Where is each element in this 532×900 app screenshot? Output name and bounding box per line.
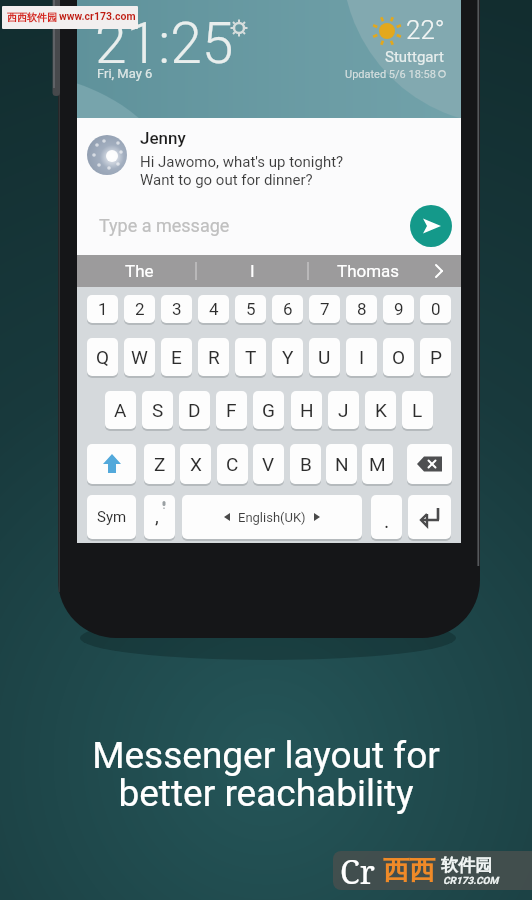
staticText: 2 [135, 299, 145, 319]
button[interactable] [87, 444, 136, 484]
staticText: 软件园 [441, 855, 492, 876]
button[interactable]: , [144, 495, 175, 539]
button[interactable]: K [365, 391, 396, 429]
staticText: B [300, 453, 312, 475]
staticText: 21:25 [95, 10, 234, 77]
button[interactable]: V [253, 444, 284, 484]
staticText: www.cr173.com [59, 10, 136, 22]
staticText: A [114, 399, 127, 421]
button[interactable]: English(UK) [182, 495, 362, 539]
button[interactable]: I [196, 255, 308, 287]
button[interactable]: 3 [161, 295, 192, 323]
button[interactable]: H [291, 391, 322, 429]
button[interactable]: 2 [124, 295, 155, 323]
staticText: , [155, 505, 159, 527]
staticText: M [369, 453, 386, 475]
button[interactable]: 1 [87, 295, 118, 323]
button[interactable]: Q [87, 338, 118, 376]
button[interactable]: Type a message [87, 203, 367, 247]
staticText: Messenger layout for better reachability [0, 734, 532, 815]
button[interactable]: A [105, 391, 136, 429]
staticText: Jenny [140, 128, 186, 148]
staticText: P [430, 346, 442, 368]
staticText: English(UK) [238, 510, 306, 525]
staticText: L [412, 399, 423, 421]
button[interactable]: M [362, 444, 393, 484]
staticText: . [384, 509, 390, 532]
button[interactable]: G [253, 391, 284, 429]
button[interactable]: L [402, 391, 433, 429]
staticText: 4 [209, 299, 219, 319]
staticText: N [335, 453, 349, 475]
staticText: Updated 5/6 18:58 [345, 68, 436, 81]
staticText: 9 [394, 299, 404, 319]
button[interactable]: O [383, 338, 414, 376]
staticText: W [131, 346, 148, 368]
staticText: X [190, 453, 202, 475]
button[interactable]: E [161, 338, 192, 376]
button[interactable]: 7 [309, 295, 340, 323]
button[interactable]: W [124, 338, 155, 376]
staticText: J [338, 399, 349, 421]
staticText: Cr [340, 851, 375, 889]
staticText: O [392, 346, 406, 368]
button[interactable] [425, 255, 453, 287]
staticText: Z [154, 453, 166, 475]
button[interactable]: 8 [346, 295, 377, 323]
button[interactable]: D [179, 391, 210, 429]
button[interactable]: F [216, 391, 247, 429]
button[interactable]: Sym [87, 495, 136, 539]
staticText: Q [96, 346, 110, 368]
button[interactable]: J [328, 391, 359, 429]
button[interactable]: Y [272, 338, 303, 376]
button[interactable]: U [309, 338, 340, 376]
button[interactable]: 4 [198, 295, 229, 323]
button[interactable]: Z [144, 444, 175, 484]
staticText: 5 [246, 299, 256, 319]
button[interactable]: 6 [272, 295, 303, 323]
staticText: F [226, 399, 237, 421]
staticText: Want to go out for dinner? [140, 171, 313, 189]
button[interactable]: T [235, 338, 266, 376]
button[interactable]: . [371, 495, 402, 539]
staticText: 6 [283, 299, 293, 319]
staticText: 1 [98, 299, 108, 319]
staticText: 22° [406, 15, 445, 45]
button[interactable]: N [326, 444, 357, 484]
staticText: K [375, 399, 387, 421]
button[interactable]: Cr [333, 851, 532, 890]
staticText: 西西软件园 [7, 11, 57, 24]
button[interactable]: B [290, 444, 321, 484]
button[interactable]: 西西软件园 [2, 6, 138, 29]
button[interactable]: 9 [383, 295, 414, 323]
staticText: E [171, 346, 182, 368]
staticText: Sym [97, 508, 127, 526]
staticText: C [226, 453, 239, 475]
staticText: T [245, 346, 257, 368]
staticText: H [300, 399, 314, 421]
button[interactable]: The [82, 255, 196, 287]
button[interactable]: C [217, 444, 248, 484]
button[interactable]: I [346, 338, 377, 376]
button[interactable] [407, 444, 452, 484]
button[interactable]: R [198, 338, 229, 376]
button[interactable]: 5 [235, 295, 266, 323]
staticText: Type a message [99, 215, 230, 236]
button[interactable]: 0 [420, 295, 451, 323]
button[interactable]: X [180, 444, 211, 484]
staticText: 西西 [383, 854, 435, 887]
staticText: Hi Jawomo, what's up tonight? [140, 153, 344, 171]
button[interactable] [408, 495, 451, 539]
button[interactable]: P [420, 338, 451, 376]
staticText: 7 [320, 299, 330, 319]
button[interactable] [410, 205, 452, 247]
staticText: G [262, 399, 275, 421]
staticText: I [359, 346, 365, 368]
staticText: CR173.COM [443, 875, 499, 887]
staticText: V [262, 453, 275, 475]
button[interactable]: S [142, 391, 173, 429]
staticText: Stuttgart [385, 48, 444, 66]
button[interactable]: Thomas [308, 255, 428, 287]
staticText: 3 [172, 299, 182, 319]
staticText: Thomas [337, 261, 400, 281]
